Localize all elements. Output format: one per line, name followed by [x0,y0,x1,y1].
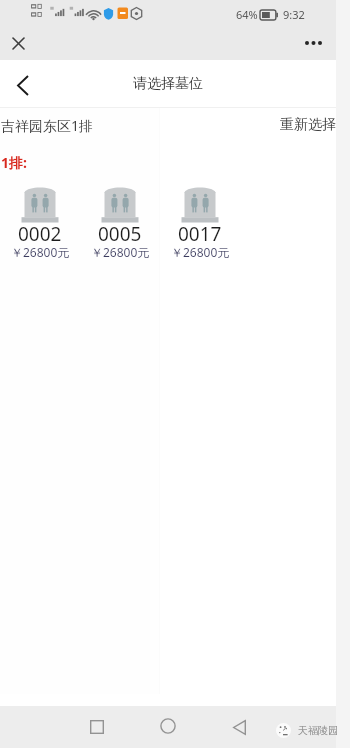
button[interactable]: 0005 [80,182,160,265]
button[interactable]: Recents [74,706,120,748]
button[interactable]: Back [216,706,262,748]
staticText: 64% [236,7,258,22]
staticText: 0005 [98,221,142,247]
button[interactable]: More options [294,28,330,60]
button[interactable]: 重新选择 [272,116,336,134]
staticText: ￥26800元 [11,244,70,260]
staticText: 0002 [18,221,62,247]
button[interactable]: Close [0,28,36,60]
button[interactable]: Back [0,60,44,108]
staticText: 1排: [1,153,27,172]
staticText: 9:32 [283,7,305,22]
staticText: 天福陵园 [298,724,338,737]
staticText: 请选择墓位 [133,75,203,93]
button[interactable]: Home [145,706,191,748]
staticText: ￥26800元 [91,244,150,260]
staticText: 吉祥园东区1排 [1,116,94,135]
button[interactable]: 0017 [160,182,240,265]
staticText: ￥26800元 [171,244,230,260]
staticText: 重新选择 [280,116,336,134]
staticText: 0017 [178,221,222,247]
button[interactable]: 0002 [0,182,80,265]
